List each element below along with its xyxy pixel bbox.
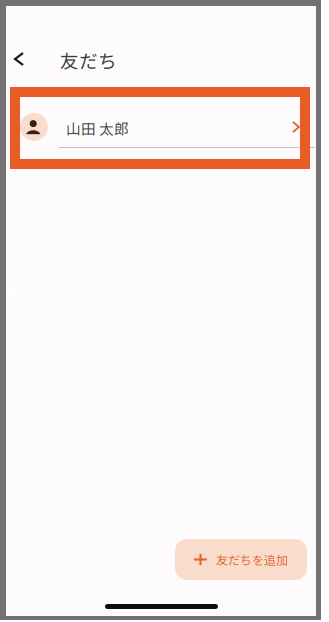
button[interactable]: Back — [6, 43, 32, 75]
staticText: 友だち — [60, 46, 117, 73]
staticText: 友だちを追加 — [216, 551, 288, 568]
button[interactable]: 友だちを追加 — [175, 539, 307, 580]
staticText: 山田 太郎 — [66, 117, 129, 139]
